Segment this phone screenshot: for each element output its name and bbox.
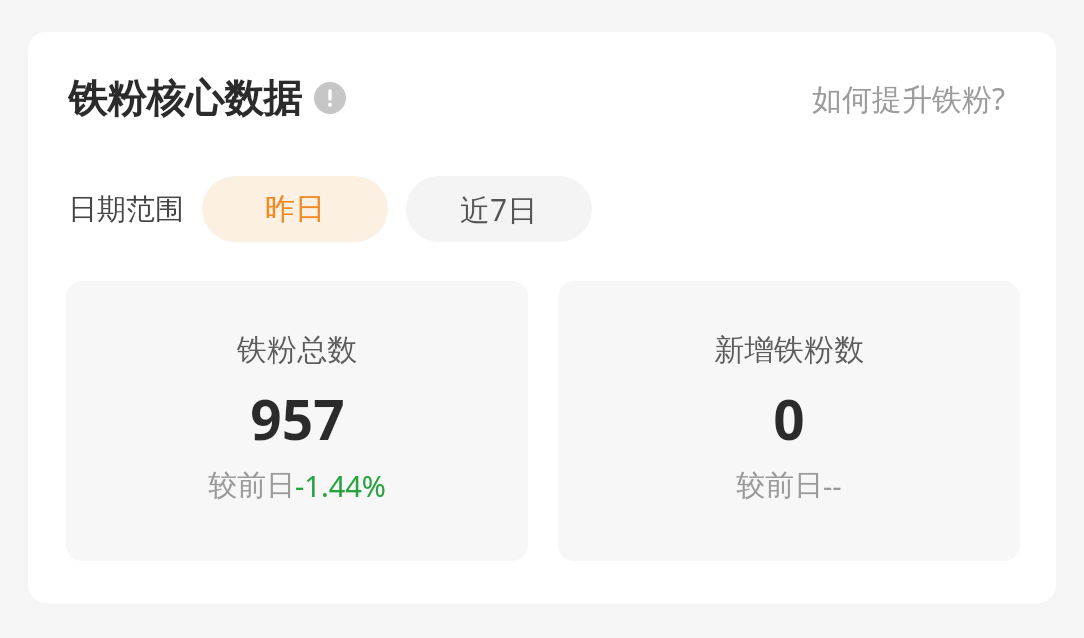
button[interactable]: 近7日 (406, 176, 592, 242)
staticText: 如何提升铁粉? (812, 78, 1006, 119)
staticText: 铁粉核心数据 (68, 74, 302, 122)
button[interactable]: 如何提升铁粉? (812, 78, 1006, 119)
staticText: 近7日 (460, 189, 538, 230)
staticText: 日期范围 (68, 191, 184, 228)
staticText: 0 (773, 381, 805, 456)
staticText: 957 (250, 381, 345, 456)
staticText: -- (823, 466, 842, 505)
button[interactable]: 铁粉核心数据 (68, 74, 346, 122)
staticText: 新增铁粉数 (714, 331, 864, 369)
staticText: 铁粉总数 (237, 331, 357, 369)
other: 说明 (314, 82, 346, 114)
button[interactable]: 新增铁粉数 (558, 281, 1020, 561)
button[interactable]: 昨日 (202, 176, 388, 242)
staticText: 昨日 (265, 190, 325, 228)
staticText: 较前日 (736, 467, 823, 504)
staticText: -1.44% (295, 466, 386, 505)
button[interactable]: 铁粉总数 (66, 281, 528, 561)
staticText: 较前日 (208, 467, 295, 504)
